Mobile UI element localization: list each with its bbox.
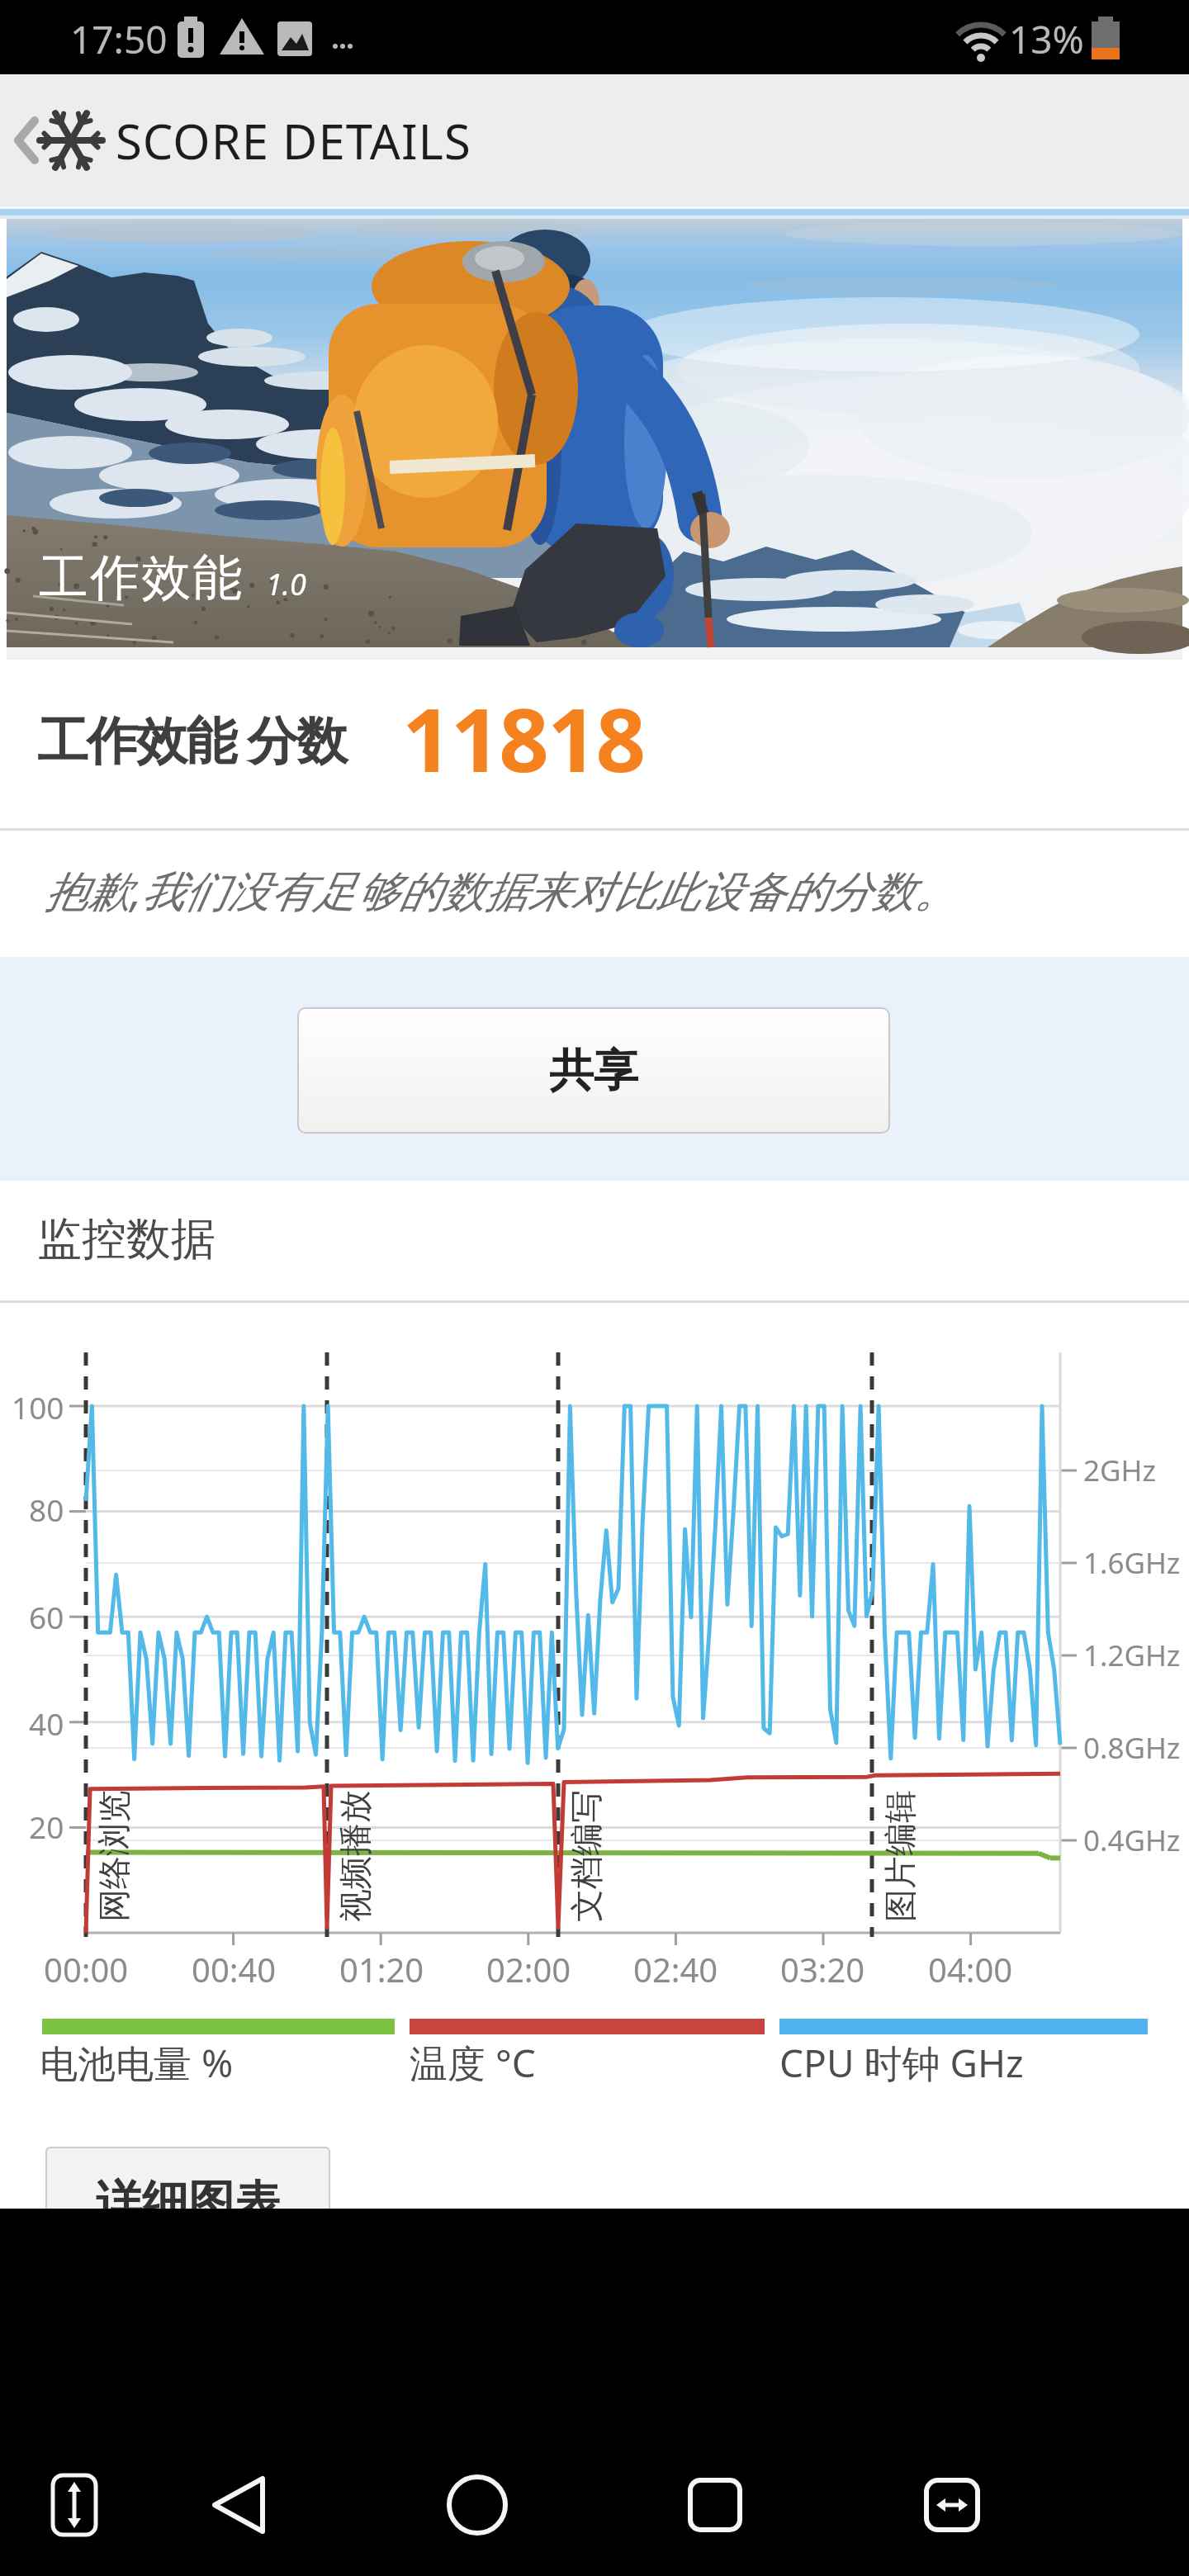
staticText: 图片编辑 <box>879 1790 921 1922</box>
staticText: 视频播放 <box>334 1790 376 1922</box>
staticText: 网络浏览 <box>93 1790 135 1922</box>
staticText: 详细图表 <box>96 2174 281 2233</box>
staticText: 40 <box>29 1702 64 1744</box>
button[interactable] <box>33 2469 116 2543</box>
staticText: 100 <box>12 1386 64 1428</box>
button[interactable]: 共享 <box>297 1007 890 1134</box>
button[interactable] <box>198 2469 281 2543</box>
staticText: 01:20 <box>339 1947 424 1991</box>
staticText: 0.4GHz <box>1083 1821 1181 1860</box>
staticText: 温度 °C <box>410 2037 536 2089</box>
staticText: 04:00 <box>928 1947 1013 1991</box>
staticText: 抱歉,我们没有足够的数据来对比此设备的分数。 <box>45 860 958 919</box>
staticText: 2GHz <box>1083 1451 1156 1490</box>
staticText: 00:00 <box>44 1947 129 1991</box>
button[interactable] <box>674 2469 756 2543</box>
staticText: 文档编写 <box>566 1790 607 1922</box>
staticText: 工作效能 分数 <box>37 704 347 774</box>
staticText: 工作效能 <box>38 547 243 609</box>
staticText: 1.2GHz <box>1083 1636 1181 1675</box>
staticText: 监控数据 <box>37 1211 216 1267</box>
button[interactable] <box>436 2469 519 2543</box>
staticText: 共享 <box>549 1043 638 1099</box>
staticText: 02:40 <box>633 1947 718 1991</box>
button[interactable] <box>911 2469 993 2543</box>
staticText: 电池电量 % <box>40 2037 234 2089</box>
staticText: SCORE DETAILS <box>116 108 471 173</box>
staticText: 1.6GHz <box>1083 1543 1181 1583</box>
button[interactable]: 详细图表 <box>45 2147 330 2259</box>
staticText: 80 <box>29 1489 64 1530</box>
staticText: 03:20 <box>780 1947 865 1991</box>
staticText: CPU 时钟 GHz <box>779 2037 1024 2089</box>
staticText: 20 <box>29 1806 64 1847</box>
staticText: 13% <box>1009 13 1084 65</box>
staticText: 17:50 <box>70 13 168 65</box>
staticText: 1.0 <box>266 564 306 604</box>
staticText: 60 <box>29 1596 64 1637</box>
staticText: 00:40 <box>192 1947 277 1991</box>
staticText: 02:00 <box>486 1947 571 1991</box>
staticText: 11818 <box>402 679 645 794</box>
button[interactable] <box>0 78 578 202</box>
staticText: 0.8GHz <box>1083 1728 1181 1768</box>
